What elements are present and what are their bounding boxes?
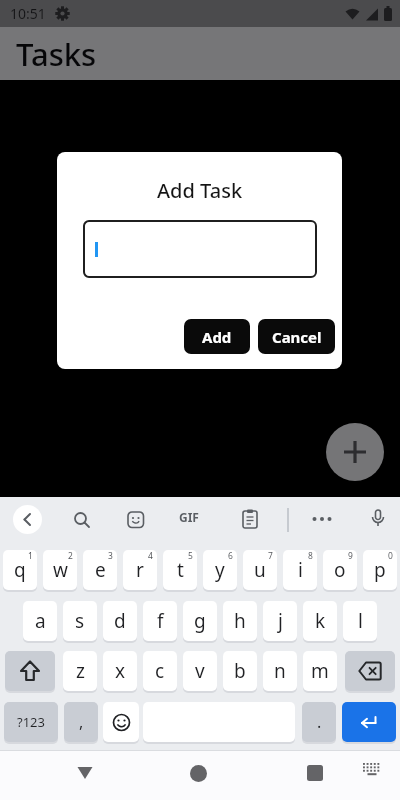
staticText: 8 bbox=[308, 550, 313, 562]
button[interactable]: x bbox=[103, 651, 137, 691]
button[interactable] bbox=[345, 651, 395, 691]
staticText: 2 bbox=[68, 550, 73, 562]
staticText: i bbox=[298, 557, 303, 583]
button[interactable]: Cancel bbox=[258, 319, 335, 354]
button[interactable]: GIF bbox=[0, 497, 400, 750]
button[interactable] bbox=[103, 702, 139, 742]
staticText: h bbox=[234, 608, 246, 634]
button[interactable] bbox=[73, 511, 91, 529]
button[interactable]: , bbox=[64, 702, 98, 742]
staticText: Tasks bbox=[16, 33, 97, 75]
button[interactable] bbox=[311, 511, 333, 523]
staticText: 10:51 bbox=[10, 4, 46, 23]
staticText: 7 bbox=[268, 550, 273, 562]
staticText: 1 bbox=[28, 550, 33, 562]
button[interactable] bbox=[127, 511, 145, 529]
button[interactable]: e bbox=[83, 550, 117, 590]
staticText: ?123 bbox=[17, 713, 45, 731]
staticText: v bbox=[195, 658, 205, 684]
staticText: f bbox=[157, 608, 164, 634]
staticText: 3 bbox=[108, 550, 113, 562]
button[interactable] bbox=[342, 702, 396, 742]
button[interactable]: v bbox=[183, 651, 217, 691]
staticText: q bbox=[14, 557, 26, 583]
button[interactable] bbox=[300, 758, 330, 788]
button[interactable]: s bbox=[63, 601, 97, 641]
button[interactable]: l bbox=[343, 601, 377, 641]
button[interactable]: g bbox=[183, 601, 217, 641]
button[interactable]: h bbox=[223, 601, 257, 641]
staticText: d bbox=[114, 608, 126, 634]
staticText: l bbox=[358, 608, 363, 634]
staticText: j bbox=[278, 608, 283, 634]
button[interactable] bbox=[13, 505, 42, 534]
staticText: z bbox=[76, 658, 85, 684]
button[interactable]: q bbox=[3, 550, 37, 590]
button[interactable]: t bbox=[163, 550, 197, 590]
button[interactable] bbox=[368, 509, 388, 529]
button[interactable] bbox=[70, 758, 100, 788]
staticText: a bbox=[35, 608, 46, 634]
button[interactable] bbox=[360, 762, 384, 780]
button[interactable]: GIF bbox=[179, 509, 199, 525]
staticText: y bbox=[215, 557, 225, 583]
staticText: n bbox=[274, 658, 286, 684]
button[interactable]: z bbox=[63, 651, 97, 691]
staticText: Cancel bbox=[272, 327, 322, 347]
staticText: m bbox=[311, 658, 329, 684]
staticText: t bbox=[177, 557, 184, 583]
button[interactable]: p bbox=[363, 550, 397, 590]
button[interactable]: u bbox=[243, 550, 277, 590]
button[interactable]: f bbox=[143, 601, 177, 641]
button[interactable]: d bbox=[103, 601, 137, 641]
button[interactable]: ?123 bbox=[4, 702, 58, 742]
button[interactable]: Add bbox=[184, 319, 250, 354]
button[interactable] bbox=[183, 758, 213, 788]
staticText: u bbox=[254, 557, 266, 583]
button[interactable]: b bbox=[223, 651, 257, 691]
staticText: Add bbox=[202, 327, 232, 347]
button[interactable]: k bbox=[303, 601, 337, 641]
button[interactable]: y bbox=[203, 550, 237, 590]
staticText: 4 bbox=[148, 550, 153, 562]
button[interactable]: j bbox=[263, 601, 297, 641]
button[interactable] bbox=[5, 651, 55, 691]
button[interactable] bbox=[240, 509, 260, 529]
button[interactable]: r bbox=[123, 550, 157, 590]
staticText: p bbox=[374, 557, 386, 583]
staticText: c bbox=[155, 658, 165, 684]
staticText: k bbox=[315, 608, 326, 634]
staticText: g bbox=[194, 608, 206, 634]
staticText: b bbox=[234, 658, 246, 684]
staticText: e bbox=[95, 557, 106, 583]
staticText: 5 bbox=[188, 550, 193, 562]
staticText: w bbox=[53, 557, 68, 583]
staticText: 9 bbox=[348, 550, 353, 562]
button[interactable]: o bbox=[323, 550, 357, 590]
button[interactable]: c bbox=[143, 651, 177, 691]
staticText: GIF bbox=[179, 509, 199, 525]
staticText: Add Task bbox=[157, 177, 243, 204]
staticText: x bbox=[115, 658, 126, 684]
staticText: 0 bbox=[388, 550, 393, 562]
button[interactable] bbox=[326, 423, 384, 481]
staticText: o bbox=[334, 557, 346, 583]
button[interactable]: w bbox=[43, 550, 77, 590]
button[interactable]: n bbox=[263, 651, 297, 691]
button[interactable]: . bbox=[302, 702, 336, 742]
staticText: s bbox=[75, 608, 85, 634]
staticText: 6 bbox=[228, 550, 233, 562]
staticText: . bbox=[317, 711, 322, 733]
button[interactable]: m bbox=[303, 651, 337, 691]
button[interactable]: i bbox=[283, 550, 317, 590]
staticText: , bbox=[79, 711, 84, 733]
button[interactable]: a bbox=[23, 601, 57, 641]
staticText: r bbox=[136, 557, 144, 583]
